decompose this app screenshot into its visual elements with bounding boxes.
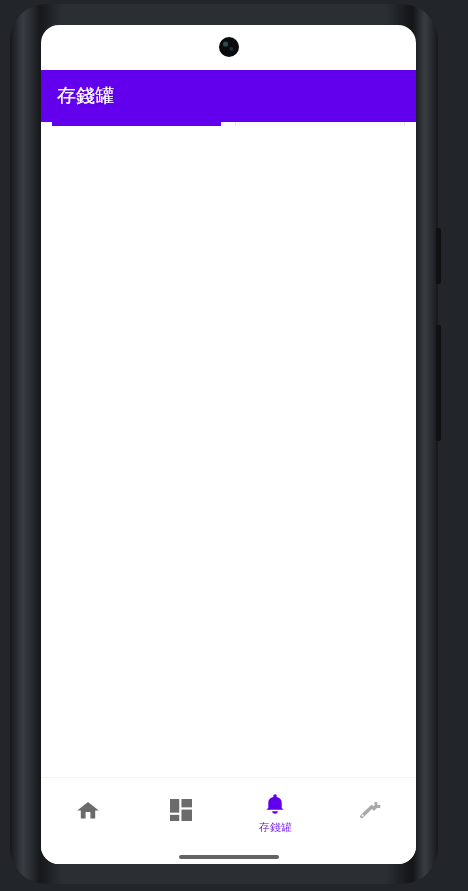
staticText: 存錢罐 — [259, 820, 292, 834]
button[interactable] — [52, 94, 221, 150]
button[interactable]: 存錢罐 — [228, 777, 322, 850]
button[interactable]: Settings — [322, 777, 416, 850]
button[interactable]: Dashboard — [134, 777, 228, 850]
button[interactable]: Home — [41, 777, 134, 850]
button[interactable] — [235, 94, 405, 150]
staticText: 存錢罐 — [57, 84, 114, 108]
